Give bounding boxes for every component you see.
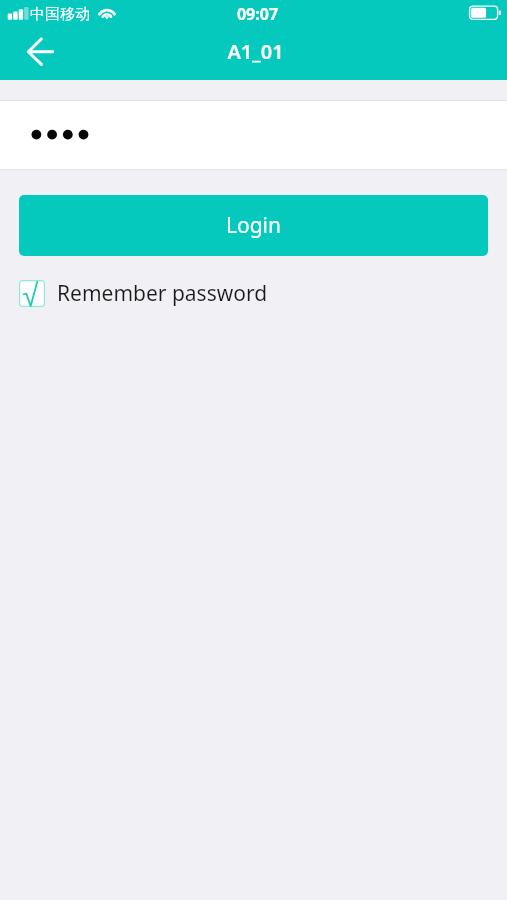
staticText: 中国移动: [30, 5, 90, 24]
staticText: Login: [226, 211, 282, 240]
button[interactable]: Password: [0, 100, 507, 170]
staticText: A1_01: [2, 38, 507, 65]
button[interactable]: Remember password: [19, 279, 268, 308]
staticText: 09:07: [4, 3, 507, 25]
staticText: Remember password: [57, 279, 268, 308]
button[interactable]: Login: [19, 195, 488, 256]
button[interactable]: Back: [0, 28, 56, 80]
